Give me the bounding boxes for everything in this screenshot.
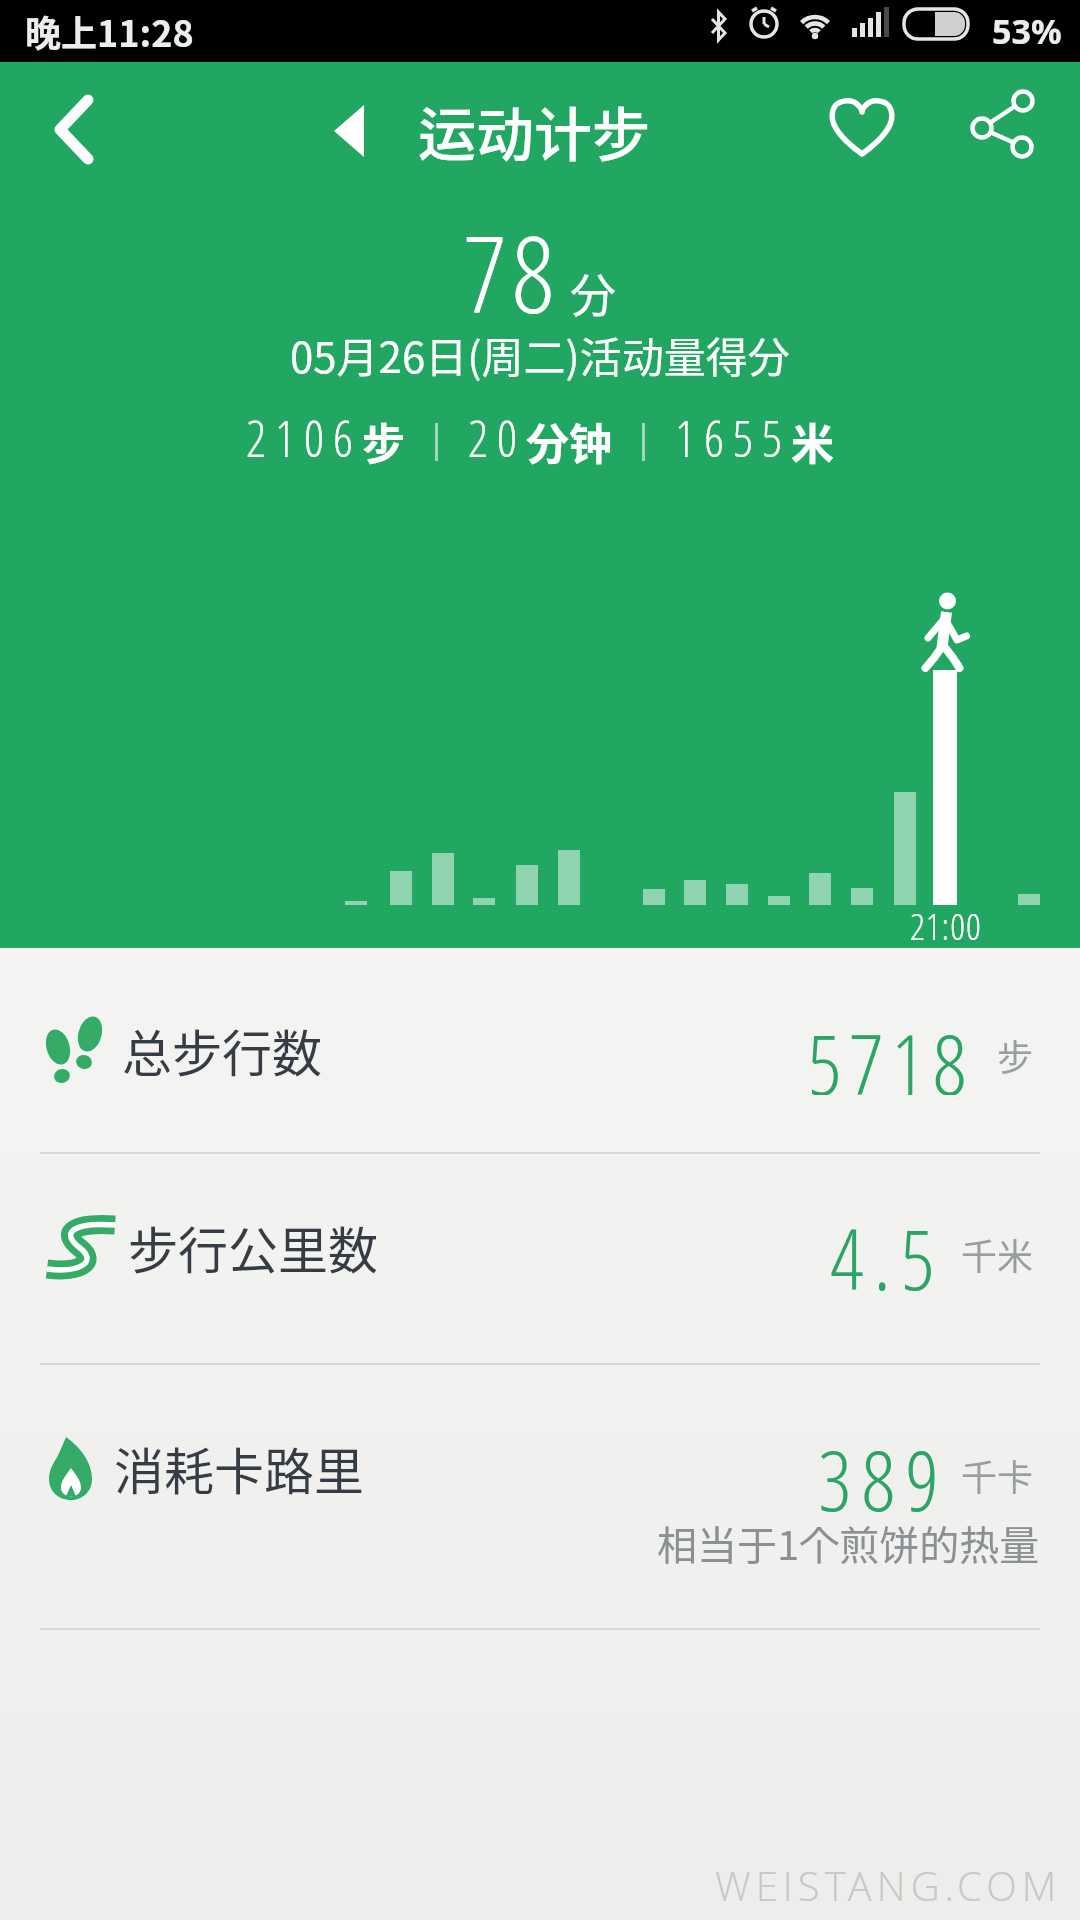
staticText: 步行公里数 <box>128 1211 378 1283</box>
button[interactable]: 步行公里数 <box>0 1200 1080 1294</box>
staticText: 4.5 <box>830 1200 945 1294</box>
staticText: 步 <box>362 410 405 472</box>
staticText: 千米 <box>961 1228 1034 1280</box>
staticText: 分钟 <box>526 410 612 472</box>
staticText: 78 <box>464 201 560 344</box>
staticText: 千卡 <box>961 1449 1034 1501</box>
button[interactable]: 总步行数 <box>0 1005 1080 1095</box>
button[interactable]: 消耗卡路里 <box>0 1421 1080 1515</box>
staticText: 分 <box>570 259 616 326</box>
staticText: 5718 <box>808 1005 975 1095</box>
staticText: 389 <box>818 1421 949 1515</box>
button[interactable] <box>812 81 912 173</box>
staticText: 05月26日(周二)活动量得分 <box>290 324 790 385</box>
button[interactable] <box>955 77 1047 169</box>
staticText: 步 <box>997 1029 1034 1081</box>
staticText: 21:00 <box>910 900 982 946</box>
staticText: 总步行数 <box>122 1014 322 1086</box>
staticText: 相当于1个煎饼的热量 <box>657 1514 1040 1572</box>
staticText: 20 <box>468 404 526 472</box>
staticText: 晚上11:28 <box>25 5 194 57</box>
staticText: 运动计步 <box>418 89 651 173</box>
button[interactable] <box>30 82 120 172</box>
staticText: 消耗卡路里 <box>114 1432 364 1504</box>
staticText: 2106 <box>246 404 362 472</box>
staticText: 1655 <box>675 404 791 472</box>
staticText: WEISTANG.COM <box>715 1858 1062 1912</box>
staticText: 米 <box>791 410 834 472</box>
staticText: 53% <box>992 8 1062 54</box>
